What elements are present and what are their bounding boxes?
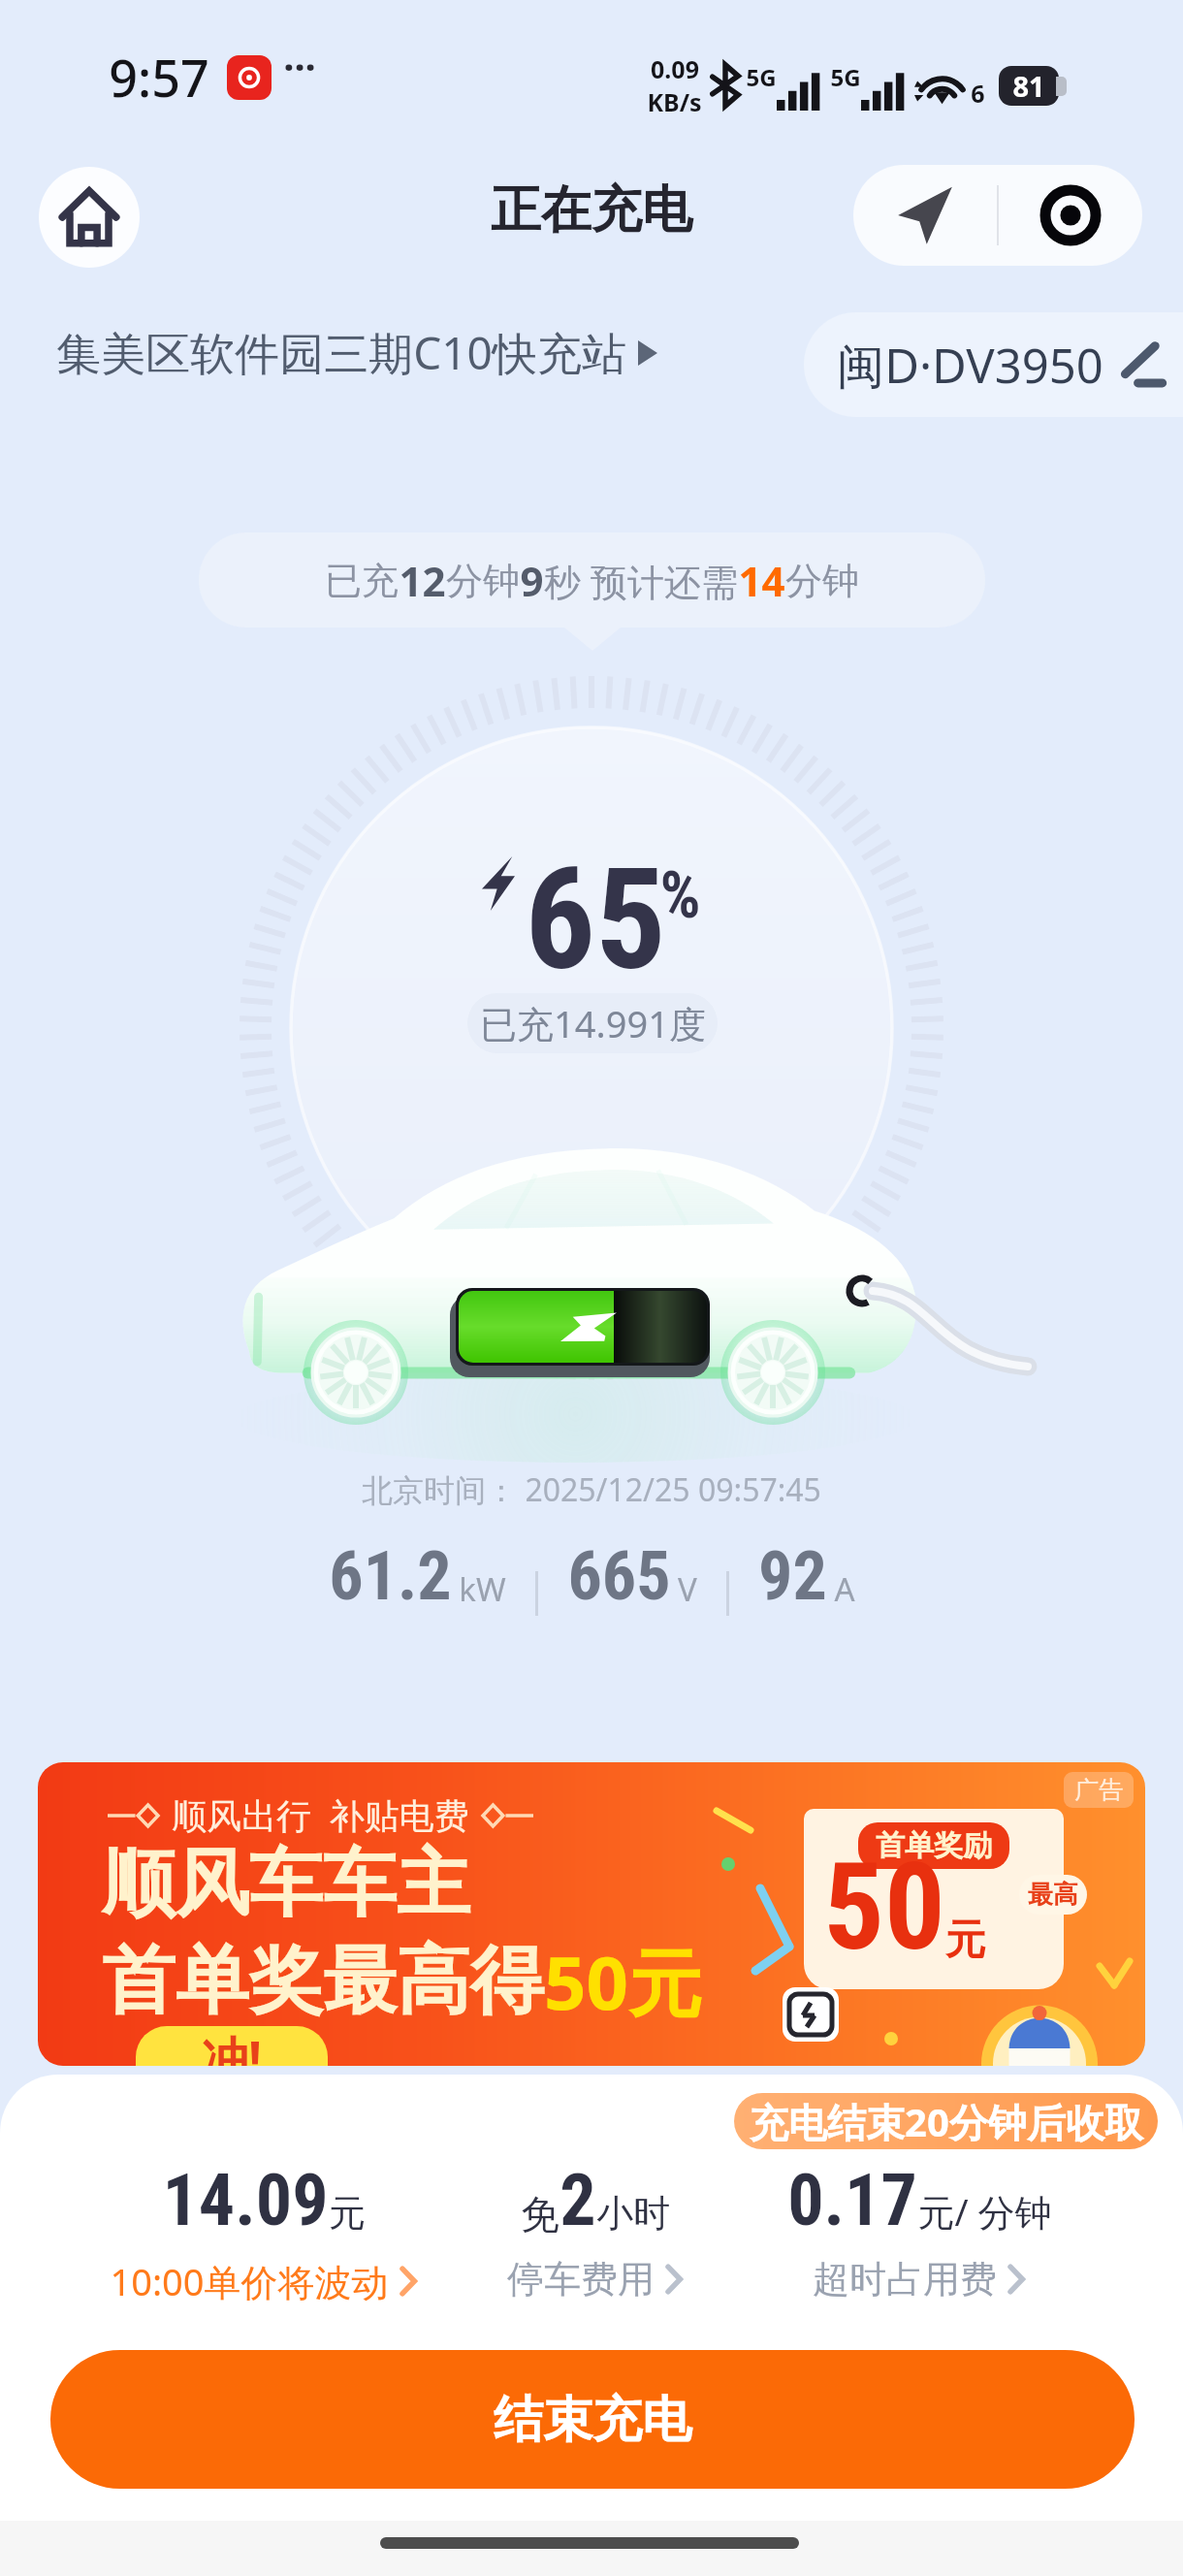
staticText: V [678, 1567, 697, 1611]
staticText: 顺风车车主 [102, 1838, 470, 1931]
button[interactable]: 结束充电 [50, 2350, 1135, 2489]
staticText: 小时 [596, 2190, 670, 2237]
staticText: 6 [971, 77, 985, 110]
button[interactable]: Locate [999, 165, 1142, 266]
button[interactable]: 充电结束20分钟后收取 [734, 2093, 1158, 2149]
staticText: 14 [738, 553, 785, 608]
staticText: 元 [329, 2190, 366, 2237]
staticText: 0.17 [787, 2158, 917, 2242]
staticText: 5G [746, 61, 777, 93]
staticText: 广告 [1074, 1775, 1123, 1805]
staticText: 9 [520, 553, 544, 608]
staticText: 冲! [202, 2026, 262, 2066]
staticText: 2 [560, 2158, 596, 2242]
staticText: 秒 预计还需 [544, 556, 738, 606]
staticText: ··· [283, 40, 316, 92]
button[interactable]: 集美区软件园三期C10快充站 [56, 322, 657, 383]
staticText: 10:00单价将波动 [110, 2256, 389, 2306]
staticText: 元/ 分钟 [917, 2186, 1052, 2237]
staticText: 最高 [1028, 1879, 1078, 1911]
staticText: 9:57 [109, 43, 209, 112]
staticText: 14.09 [162, 2158, 329, 2242]
button[interactable]: 闽D·DV3950 [804, 312, 1183, 417]
staticText: 665 [567, 1536, 671, 1616]
staticText: % [659, 858, 701, 933]
staticText: 50元 [544, 1931, 702, 2032]
button[interactable]: 免 [401, 2158, 789, 2302]
staticText: 元 [945, 1915, 986, 1966]
button[interactable]: Navigate [853, 165, 997, 266]
staticText: 81 [1012, 67, 1045, 105]
staticText: 超时占用费 [813, 2256, 997, 2302]
staticText: 61.2 [329, 1536, 452, 1616]
staticText: kW [459, 1567, 506, 1611]
staticText: 12 [399, 553, 446, 608]
staticText: 50 [823, 1837, 945, 1978]
staticText: 分钟 [446, 558, 520, 604]
staticText: 停车费用 [507, 2256, 655, 2302]
button[interactable]: Home [39, 167, 140, 268]
staticText: A [834, 1567, 855, 1611]
staticText: 正在充电 [491, 178, 692, 242]
staticText: 免 [521, 2190, 560, 2238]
staticText: 充电结束20分钟后收取 [750, 2095, 1143, 2148]
staticText: 闽D·DV3950 [837, 333, 1103, 398]
button[interactable]: 14.09 [70, 2158, 458, 2306]
staticText: 北京时间： 2025/12/25 09:57:45 [362, 1468, 821, 1511]
staticText: 首单奖最高得 [102, 1935, 544, 2028]
button[interactable]: 顺风出行 补贴电费 [38, 1762, 1145, 2066]
staticText: 顺风出行 补贴电费 [172, 1791, 469, 1839]
staticText: 首单奖励 [876, 1827, 992, 1864]
staticText: 分钟 [785, 558, 859, 604]
staticText: 5G [830, 61, 861, 93]
staticText: 0.09 [651, 52, 699, 85]
staticText: 已充14.991度 [480, 998, 706, 1048]
button[interactable]: 0.17 [725, 2158, 1113, 2302]
staticText: KB/s [647, 85, 702, 118]
staticText: 结束充电 [494, 2389, 691, 2451]
staticText: 已充 [325, 558, 399, 604]
staticText: 92 [758, 1536, 827, 1616]
staticText: 65 [525, 838, 666, 1002]
staticText: 集美区软件园三期C10快充站 [56, 322, 626, 383]
